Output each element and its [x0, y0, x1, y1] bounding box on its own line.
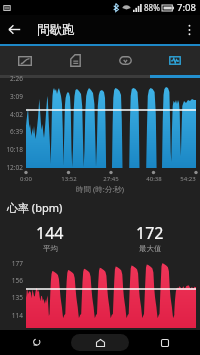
- staticText: 間歇跑: [37, 22, 75, 38]
- button[interactable]: More options: [178, 15, 200, 44]
- staticText: 7:08: [177, 1, 196, 14]
- staticText: 144: [36, 222, 64, 244]
- staticText: 114: [1, 311, 23, 320]
- staticText: 135: [1, 293, 23, 302]
- staticText: 13:52: [57, 175, 81, 183]
- staticText: 12:02: [1, 163, 23, 172]
- staticText: 平均: [43, 244, 58, 253]
- button[interactable]: Charts: [150, 46, 200, 75]
- staticText: 3:09: [1, 92, 23, 101]
- staticText: 6:39: [1, 127, 23, 136]
- staticText: 心率 (bpm): [7, 200, 63, 215]
- staticText: 10:18: [1, 145, 23, 154]
- staticText: 0:00: [14, 175, 38, 183]
- staticText: 88%: [144, 2, 160, 13]
- staticText: 時間 (時:分:秒): [0, 184, 200, 194]
- button[interactable]: Back: [18, 330, 54, 355]
- button[interactable]: Recents: [147, 330, 183, 355]
- staticText: 177: [1, 259, 23, 268]
- button[interactable]: Map: [0, 46, 50, 75]
- button[interactable]: Laps: [50, 46, 100, 75]
- button[interactable]: Home: [71, 334, 129, 351]
- staticText: 2:26: [1, 74, 23, 83]
- button[interactable]: Loop: [100, 46, 150, 75]
- staticText: 54:23: [176, 175, 200, 183]
- staticText: 4:02: [1, 110, 23, 119]
- staticText: 172: [136, 222, 164, 244]
- staticText: 40:38: [142, 175, 166, 183]
- button[interactable]: Back: [0, 15, 28, 44]
- staticText: 27:45: [99, 175, 123, 183]
- staticText: 156: [1, 276, 23, 285]
- staticText: 最大值: [139, 244, 162, 253]
